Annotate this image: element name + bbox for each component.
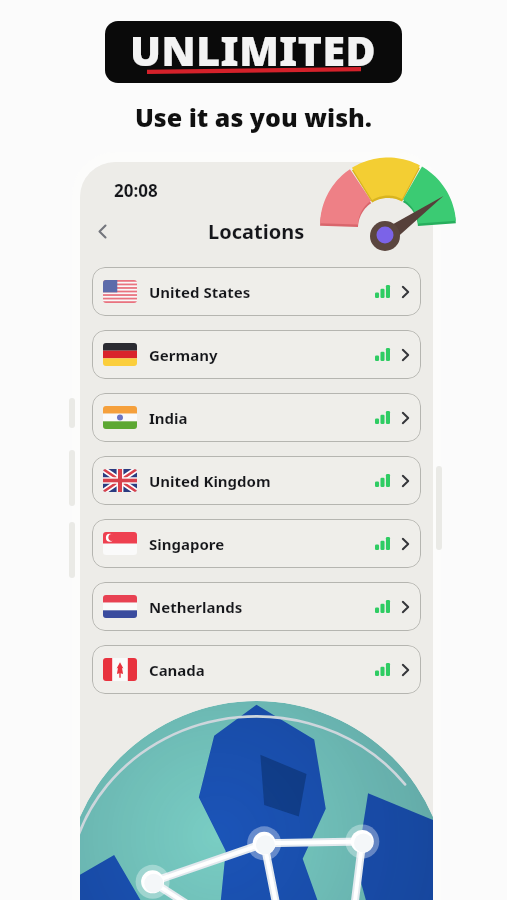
button[interactable]: Netherlands: [92, 582, 421, 631]
staticText: United Kingdom: [149, 471, 375, 491]
staticText: Canada: [149, 660, 375, 680]
staticText: Germany: [149, 345, 375, 365]
button[interactable]: Germany: [92, 330, 421, 379]
button[interactable]: Back: [86, 215, 118, 247]
button[interactable]: United Kingdom: [92, 456, 421, 505]
button[interactable]: India: [92, 393, 421, 442]
staticText: UNLIMITED: [130, 22, 377, 78]
button[interactable]: Canada: [92, 645, 421, 694]
staticText: Locations: [208, 218, 305, 245]
staticText: Singapore: [149, 534, 375, 554]
button[interactable]: Singapore: [92, 519, 421, 568]
staticText: 20:08: [114, 179, 158, 202]
staticText: Use it as you wish.: [0, 100, 507, 134]
button[interactable]: United States: [92, 267, 421, 316]
staticText: Netherlands: [149, 597, 375, 617]
staticText: India: [149, 408, 375, 428]
staticText: United States: [149, 282, 375, 302]
